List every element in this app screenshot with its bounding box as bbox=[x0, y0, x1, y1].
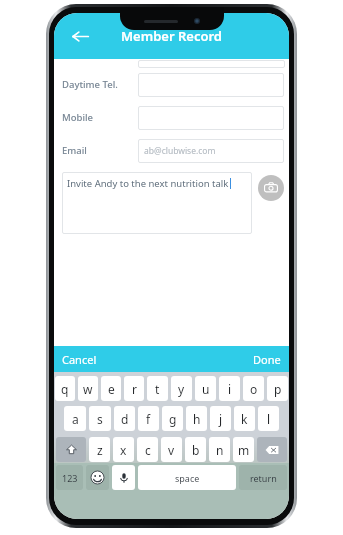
button[interactable]: z bbox=[89, 437, 110, 462]
button[interactable]: w bbox=[78, 376, 98, 401]
button[interactable]: Take photo bbox=[258, 175, 284, 201]
staticText: n bbox=[216, 442, 224, 458]
button[interactable]: return bbox=[239, 465, 287, 490]
button[interactable]: e bbox=[101, 376, 121, 401]
staticText: o bbox=[250, 381, 258, 397]
button[interactable]: t bbox=[147, 376, 168, 401]
staticText: e bbox=[108, 381, 115, 397]
staticText: b bbox=[192, 442, 200, 458]
button[interactable]: i bbox=[219, 376, 240, 401]
button[interactable]: g bbox=[162, 406, 183, 431]
button[interactable] bbox=[138, 60, 285, 68]
button[interactable]: v bbox=[161, 437, 182, 462]
staticText: Mobile bbox=[62, 111, 93, 124]
staticText: i bbox=[228, 381, 232, 397]
button[interactable]: f bbox=[138, 406, 159, 431]
staticText: f bbox=[146, 411, 151, 427]
staticText: l bbox=[267, 411, 271, 427]
button[interactable]: b bbox=[185, 437, 206, 462]
staticText: v bbox=[168, 442, 175, 458]
staticText: 123 bbox=[62, 472, 78, 484]
staticText: u bbox=[202, 381, 210, 397]
staticText: return bbox=[250, 472, 277, 484]
staticText: Invite Andy to the next nutrition talk bbox=[67, 177, 229, 190]
button[interactable]: ab@clubwise.com bbox=[138, 139, 284, 163]
staticText: Cancel bbox=[62, 352, 97, 367]
button[interactable]: d bbox=[114, 406, 135, 431]
button[interactable]: x bbox=[113, 437, 134, 462]
button[interactable]: Backspace bbox=[257, 437, 287, 462]
button[interactable]: a bbox=[64, 406, 86, 431]
staticText: s bbox=[97, 411, 103, 427]
button[interactable]: Back bbox=[62, 18, 98, 54]
button[interactable]: u bbox=[195, 376, 216, 401]
staticText: c bbox=[145, 442, 151, 458]
staticText: j bbox=[219, 411, 223, 427]
staticText: Daytime Tel. bbox=[62, 78, 118, 91]
button[interactable] bbox=[138, 106, 284, 130]
staticText: h bbox=[193, 411, 201, 427]
button[interactable]: space bbox=[138, 465, 236, 490]
staticText: y bbox=[178, 381, 185, 397]
button[interactable]: h bbox=[186, 406, 207, 431]
button[interactable]: n bbox=[209, 437, 230, 462]
staticText: a bbox=[72, 411, 79, 427]
button[interactable]: Invite Andy to the next nutrition talk bbox=[62, 172, 252, 234]
staticText: q bbox=[61, 381, 69, 397]
button[interactable]: p bbox=[267, 376, 288, 401]
staticText: g bbox=[169, 411, 177, 427]
staticText: z bbox=[97, 442, 103, 458]
button[interactable]: Numbers bbox=[56, 465, 83, 490]
button[interactable]: l bbox=[258, 406, 279, 431]
button[interactable]: Shift bbox=[56, 437, 86, 462]
button[interactable]: s bbox=[89, 406, 111, 431]
staticText: Done bbox=[253, 352, 281, 367]
button[interactable]: r bbox=[124, 376, 144, 401]
button[interactable]: m bbox=[233, 437, 254, 462]
button[interactable]: Cancel bbox=[62, 346, 97, 372]
button[interactable]: k bbox=[234, 406, 255, 431]
staticText: k bbox=[241, 411, 248, 427]
button[interactable]: j bbox=[210, 406, 231, 431]
button[interactable]: y bbox=[171, 376, 192, 401]
staticText: Email bbox=[62, 144, 87, 157]
staticText: x bbox=[120, 442, 127, 458]
staticText: m bbox=[238, 442, 250, 458]
staticText: space bbox=[175, 472, 200, 484]
button[interactable]: Emoji bbox=[86, 465, 109, 490]
staticText: ab@clubwise.com bbox=[144, 145, 216, 157]
button[interactable]: o bbox=[243, 376, 264, 401]
staticText: p bbox=[274, 381, 282, 397]
staticText: r bbox=[132, 381, 137, 397]
staticText: t bbox=[155, 381, 160, 397]
button[interactable]: q bbox=[55, 376, 75, 401]
button[interactable] bbox=[138, 73, 284, 97]
button[interactable]: Done bbox=[253, 346, 281, 372]
staticText: d bbox=[121, 411, 129, 427]
button[interactable]: Voice input bbox=[112, 465, 135, 490]
staticText: w bbox=[83, 381, 93, 397]
staticText: Member Record bbox=[121, 27, 222, 45]
button[interactable]: c bbox=[137, 437, 158, 462]
